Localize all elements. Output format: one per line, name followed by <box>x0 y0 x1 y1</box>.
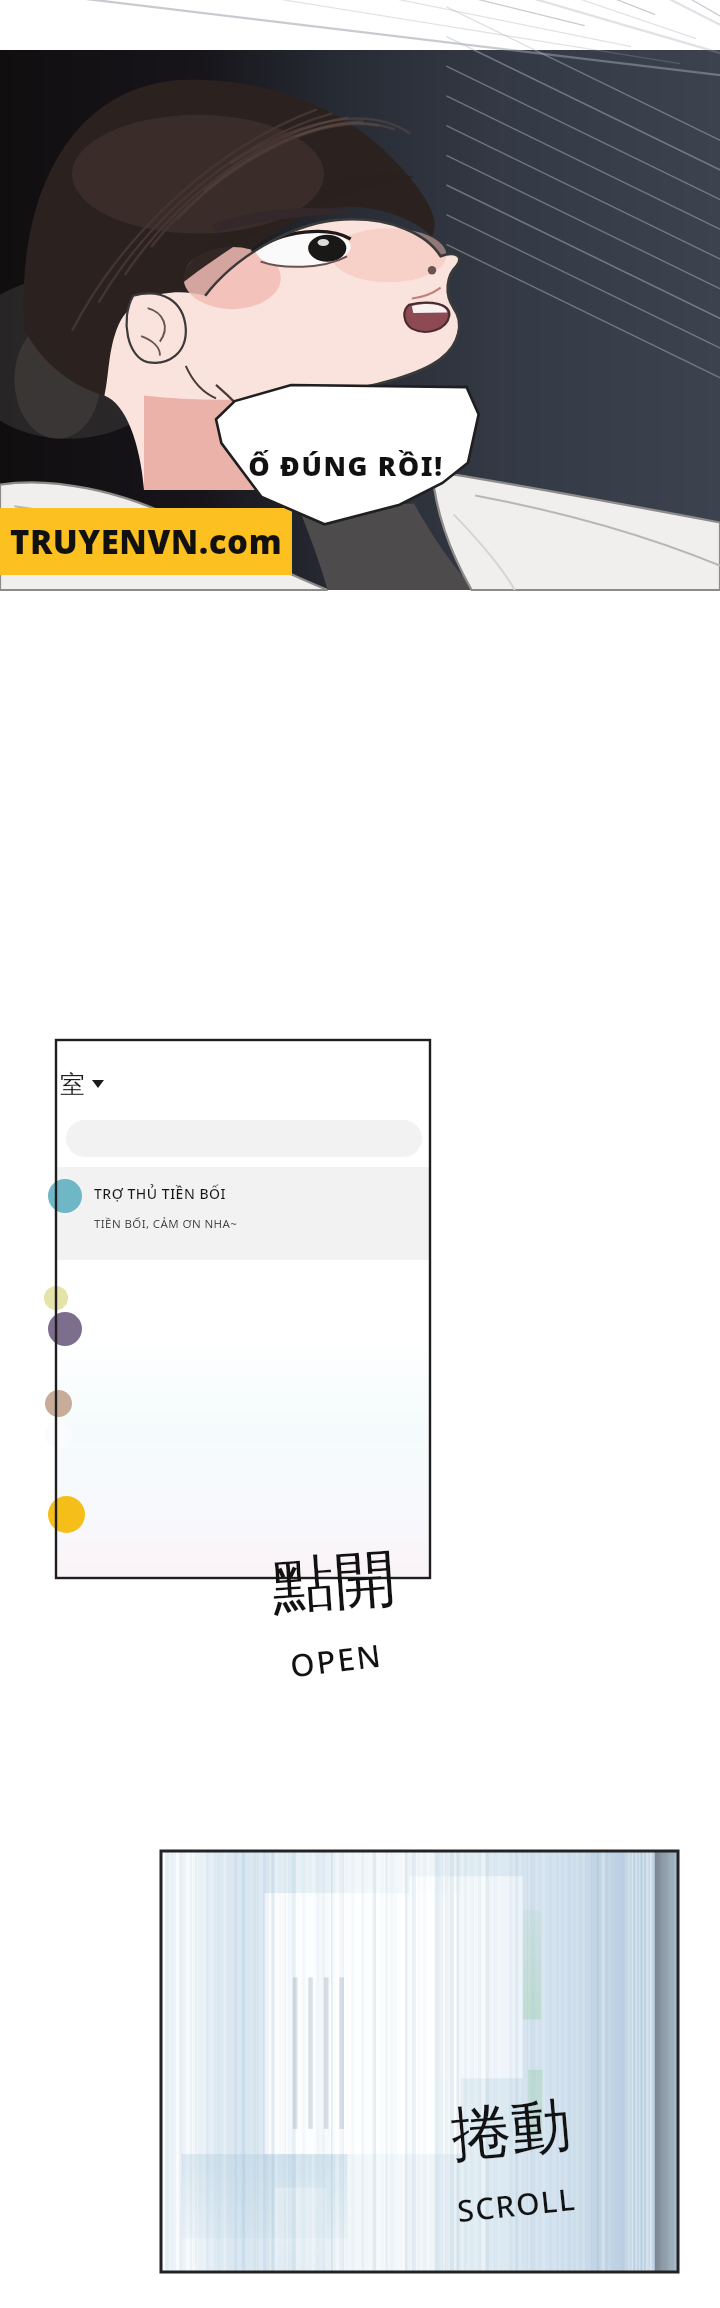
button[interactable]: 室 <box>56 1062 430 1106</box>
button[interactable] <box>0 50 720 590</box>
staticText: 捲動 <box>448 2087 574 2173</box>
staticText: 室 <box>60 1069 85 1100</box>
button[interactable]: TRỢ THỦ TIỀN BỐI <box>56 1167 430 1260</box>
staticText: TRUYENVN.com <box>10 519 283 564</box>
button[interactable]: 室 <box>56 1040 430 1578</box>
staticText: 點開 <box>269 1539 398 1625</box>
staticText: TIỀN BỐI, CẢM ƠN NHA~ <box>94 1216 238 1232</box>
button[interactable]: TRUYENVN.com <box>0 508 292 575</box>
staticText: TRỢ THỦ TIỀN BỐI <box>94 1184 227 1203</box>
button[interactable]: 捲動 <box>161 1851 678 2272</box>
staticText: Ố ĐÚNG RỒI! <box>248 447 444 484</box>
staticText: SCROLL <box>455 2178 579 2231</box>
staticText: OPEN <box>288 1633 385 1686</box>
